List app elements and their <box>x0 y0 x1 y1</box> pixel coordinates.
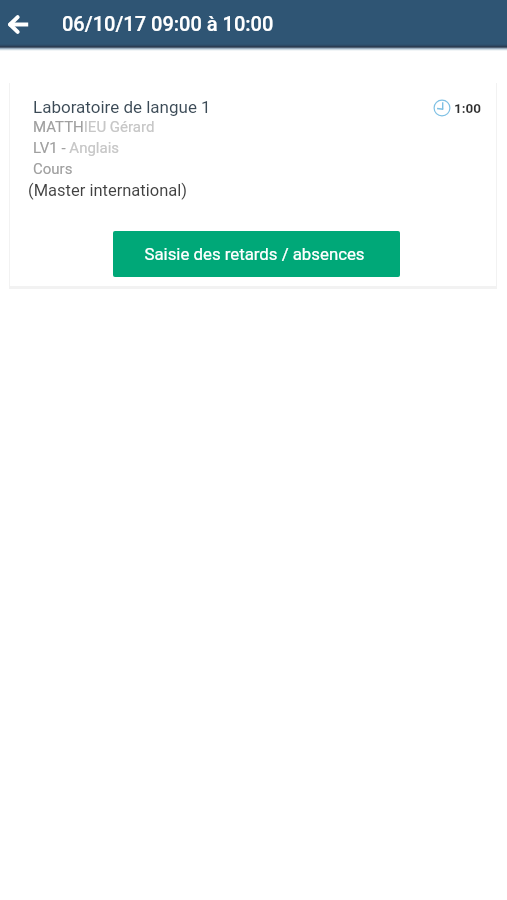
staticText: (Master international) <box>28 181 187 203</box>
staticText: Laboratoire de langue 1 <box>33 97 211 118</box>
button[interactable]: Back <box>0 0 36 46</box>
staticText: Cours <box>33 160 73 181</box>
staticText: 06/10/17 09:00 à 10:00 <box>62 12 274 35</box>
staticText: 1:00 <box>454 100 482 116</box>
button[interactable]: Saisie des retards / absences <box>113 231 400 277</box>
staticText: MATTHIEU Gérard <box>33 118 155 139</box>
staticText: LV1 - Anglais <box>33 139 120 160</box>
staticText: Saisie des retards / absences <box>144 244 365 264</box>
